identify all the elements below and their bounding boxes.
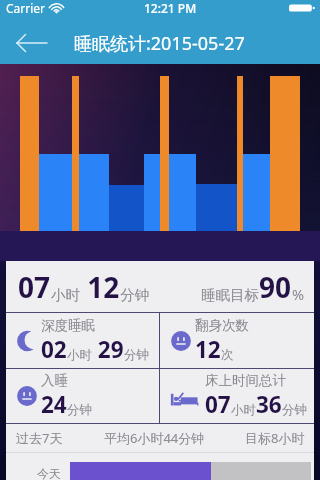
staticText: 90: [259, 268, 292, 306]
button[interactable]: 床上时间总计: [160, 369, 314, 423]
staticText: 睡眠统计:2015-05-27: [74, 31, 245, 56]
staticText: 小时: [67, 347, 92, 363]
staticText: 07: [18, 268, 51, 306]
staticText: 12: [195, 334, 221, 365]
staticText: 翻身次数: [195, 317, 249, 334]
staticText: 今天: [37, 466, 70, 480]
staticText: 过去7天: [16, 429, 63, 447]
staticText: 小时: [51, 286, 80, 304]
staticText: 床上时间总计: [205, 372, 286, 389]
staticText: 睡眠目标: [201, 286, 259, 304]
staticText: 分钟: [124, 347, 149, 363]
staticText: 07: [205, 389, 231, 420]
button[interactable]: Back: [0, 22, 62, 64]
button[interactable]: 翻身次数: [160, 313, 314, 368]
staticText: 12:21 PM: [144, 0, 197, 16]
staticText: 12: [80, 268, 120, 306]
staticText: 入睡: [41, 372, 68, 389]
staticText: 29: [92, 334, 124, 365]
staticText: 次: [221, 347, 234, 363]
staticText: 目标8小时: [245, 429, 305, 447]
staticText: 分钟: [120, 286, 149, 304]
staticText: 02: [41, 334, 67, 365]
staticText: 小时: [231, 402, 256, 418]
button[interactable]: 深度睡眠: [6, 313, 159, 368]
staticText: 平均6小时44分钟: [104, 429, 205, 447]
staticText: 36: [256, 389, 282, 420]
staticText: Carrier: [6, 0, 46, 16]
staticText: 24: [41, 389, 67, 420]
button[interactable]: 入睡: [6, 369, 159, 423]
staticText: %: [292, 284, 305, 304]
staticText: 分钟: [282, 402, 307, 418]
button[interactable]: 07: [6, 261, 314, 312]
staticText: 深度睡眠: [41, 317, 95, 334]
staticText: 分钟: [67, 402, 92, 418]
